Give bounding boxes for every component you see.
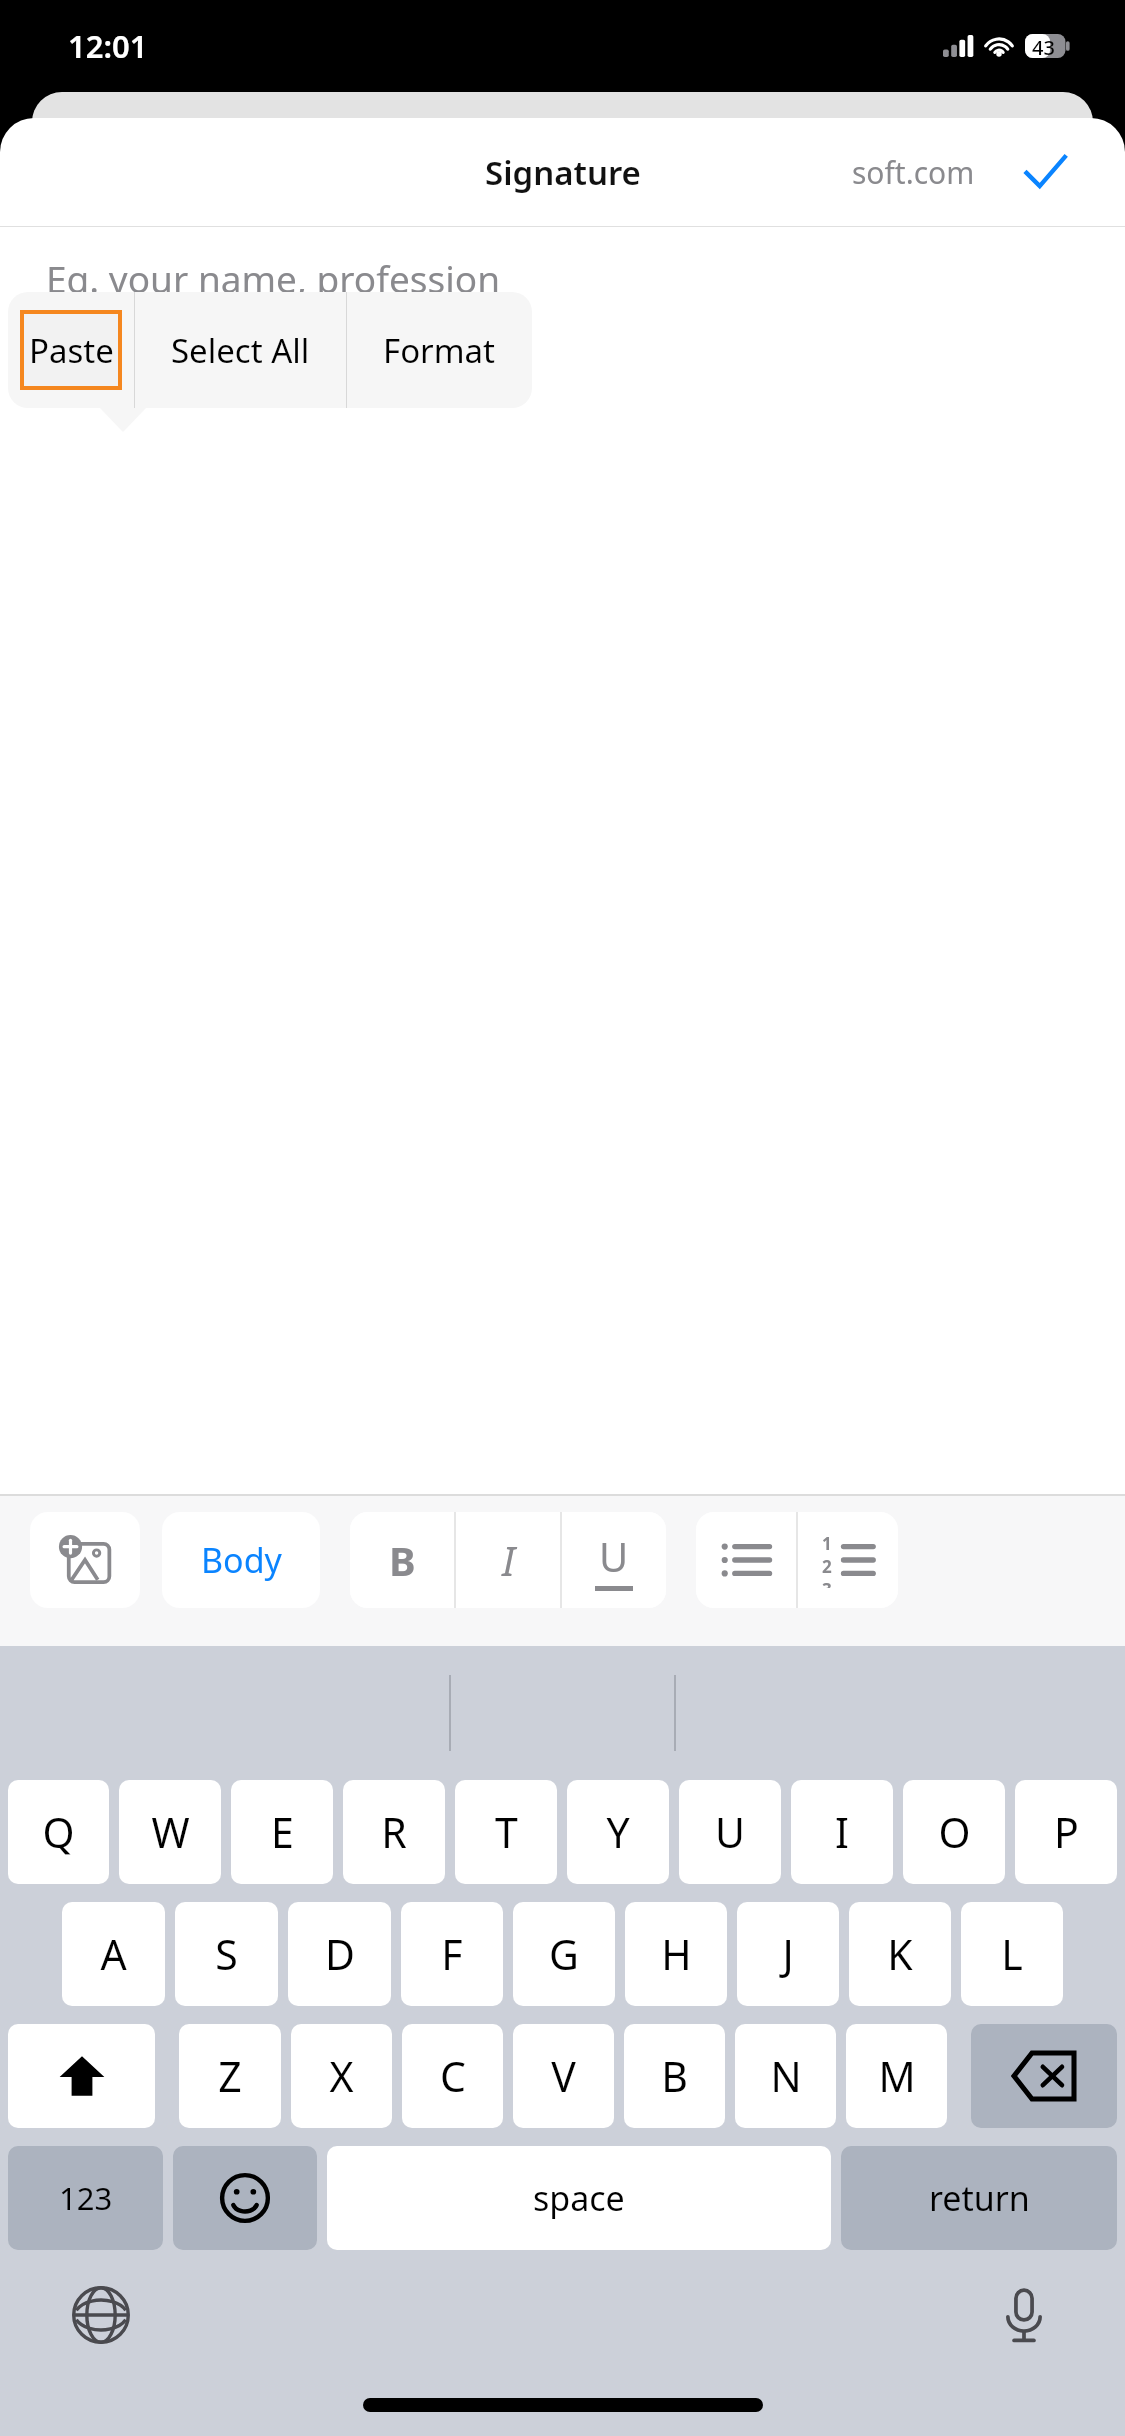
- button[interactable]: Format: [347, 292, 532, 408]
- button[interactable]: K: [849, 1902, 951, 2006]
- staticText: U: [715, 1804, 745, 1860]
- button[interactable]: U: [679, 1780, 781, 1884]
- button[interactable]: P: [1015, 1780, 1117, 1884]
- staticText: V: [551, 2048, 576, 2104]
- button[interactable]: C: [402, 2024, 503, 2128]
- button[interactable]: Q: [8, 1780, 109, 1884]
- button[interactable]: Insert image: [30, 1512, 140, 1608]
- staticText: Eg. your name, profession: [46, 253, 501, 303]
- staticText: J: [782, 1926, 794, 1982]
- staticText: E: [271, 1804, 294, 1860]
- staticText: P: [1054, 1804, 1079, 1860]
- staticText: Select All: [171, 328, 310, 373]
- button[interactable]: V: [513, 2024, 614, 2128]
- staticText: G: [549, 1926, 579, 1982]
- staticText: B: [661, 2048, 688, 2104]
- button[interactable]: B: [624, 2024, 725, 2128]
- button[interactable]: Select All: [135, 292, 346, 408]
- staticText: 2: [822, 1555, 832, 1578]
- staticText: Z: [218, 2048, 242, 2104]
- staticText: 123: [59, 2177, 113, 2219]
- button[interactable]: O: [903, 1780, 1005, 1884]
- staticText: 43: [1032, 34, 1055, 58]
- button[interactable]: I: [456, 1512, 560, 1608]
- staticText: Y: [606, 1804, 630, 1860]
- staticText: space: [533, 2175, 625, 2221]
- button[interactable]: H: [625, 1902, 727, 2006]
- button[interactable]: Change keyboard: [58, 2272, 144, 2358]
- staticText: T: [495, 1804, 518, 1860]
- button[interactable]: Y: [567, 1780, 669, 1884]
- button[interactable]: Z: [179, 2024, 281, 2128]
- staticText: Signature: [485, 150, 641, 195]
- staticText: C: [440, 2048, 466, 2104]
- button[interactable]: return: [841, 2146, 1117, 2250]
- button[interactable]: Dictate: [981, 2272, 1067, 2358]
- staticText: I: [835, 1804, 849, 1860]
- staticText: S: [215, 1926, 238, 1982]
- staticText: M: [878, 2048, 916, 2104]
- staticText: D: [325, 1926, 355, 1982]
- staticText: N: [770, 2048, 802, 2104]
- staticText: F: [441, 1926, 463, 1982]
- staticText: W: [151, 1804, 190, 1860]
- button[interactable]: J: [737, 1902, 839, 2006]
- button[interactable]: R: [343, 1780, 445, 1884]
- staticText: Body: [201, 1537, 282, 1583]
- button[interactable]: X: [291, 2024, 392, 2128]
- button[interactable]: T: [455, 1780, 557, 1884]
- staticText: L: [1001, 1926, 1023, 1982]
- button[interactable]: Bulleted list: [696, 1512, 796, 1608]
- button[interactable]: Body: [162, 1512, 320, 1608]
- button[interactable]: Shift: [8, 2024, 155, 2128]
- staticText: U: [599, 1529, 629, 1583]
- staticText: I: [502, 1533, 515, 1587]
- staticText: A: [100, 1926, 127, 1982]
- staticText: K: [887, 1926, 913, 1982]
- button[interactable]: Delete: [971, 2024, 1117, 2128]
- button[interactable]: B: [350, 1512, 454, 1608]
- staticText: B: [389, 1533, 416, 1587]
- staticText: 12:01: [68, 25, 148, 67]
- staticText: X: [329, 2048, 354, 2104]
- staticText: O: [938, 1804, 971, 1860]
- button[interactable]: N: [735, 2024, 836, 2128]
- button[interactable]: Paste: [8, 292, 134, 408]
- staticText: soft.com: [852, 152, 975, 193]
- button[interactable]: 123: [8, 2146, 163, 2250]
- button[interactable]: F: [401, 1902, 503, 2006]
- button[interactable]: Emoji: [173, 2146, 317, 2250]
- staticText: Format: [383, 328, 496, 373]
- staticText: H: [661, 1926, 692, 1982]
- button[interactable]: A: [62, 1902, 165, 2006]
- button[interactable]: I: [791, 1780, 893, 1884]
- button[interactable]: space: [327, 2146, 831, 2250]
- button[interactable]: W: [119, 1780, 221, 1884]
- button[interactable]: L: [961, 1902, 1063, 2006]
- staticText: Paste: [29, 328, 114, 373]
- staticText: return: [929, 2175, 1030, 2221]
- button[interactable]: Numbered list: [798, 1512, 898, 1608]
- button[interactable]: G: [513, 1902, 615, 2006]
- button[interactable]: Done: [1007, 134, 1083, 210]
- staticText: Q: [42, 1804, 75, 1860]
- button[interactable]: U: [562, 1512, 666, 1608]
- button[interactable]: S: [175, 1902, 278, 2006]
- button[interactable]: D: [288, 1902, 391, 2006]
- button[interactable]: E: [231, 1780, 333, 1884]
- staticText: R: [381, 1804, 407, 1860]
- staticText: 1: [822, 1532, 832, 1555]
- staticText: 3: [822, 1578, 832, 1588]
- button[interactable]: M: [846, 2024, 947, 2128]
